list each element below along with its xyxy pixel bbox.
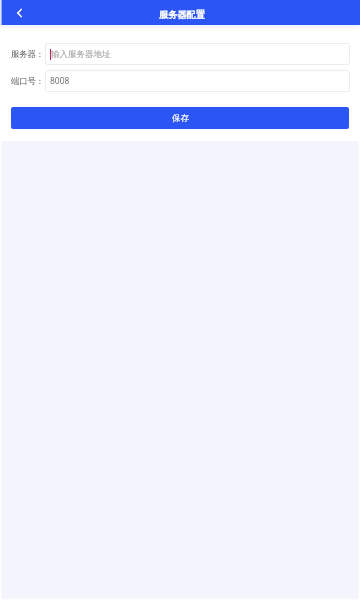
button[interactable]: 保存 bbox=[11, 107, 349, 129]
button[interactable]: 输入服务器地址 bbox=[45, 43, 350, 65]
staticText: 服务器： bbox=[11, 49, 44, 60]
staticText: 输入服务器地址 bbox=[51, 49, 111, 60]
button[interactable]: 8008 bbox=[45, 70, 350, 92]
staticText: 8008 bbox=[50, 75, 70, 87]
staticText: 服务器配置 bbox=[159, 9, 205, 21]
button[interactable]: Back bbox=[0, 0, 38, 25]
staticText: 端口号： bbox=[11, 76, 44, 87]
staticText: 保存 bbox=[172, 113, 189, 124]
